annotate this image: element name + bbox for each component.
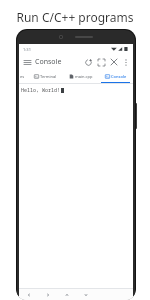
- button[interactable]: Terminal: [27, 70, 63, 83]
- staticText: Terminal: [40, 74, 57, 79]
- staticText: Hello, World!: [21, 87, 61, 94]
- button[interactable]: Open navigation menu: [22, 57, 33, 68]
- button[interactable]: Left: [19, 289, 38, 300]
- button[interactable]: Previous tab: [19, 70, 27, 83]
- staticText: Console: [111, 74, 127, 79]
- button[interactable]: Right: [38, 289, 57, 300]
- button[interactable]: Fullscreen: [95, 56, 107, 68]
- button[interactable]: More options: [121, 57, 131, 67]
- button[interactable]: main.cpp: [63, 70, 98, 83]
- staticText: 1:31: [23, 47, 31, 52]
- button[interactable]: Console: [98, 70, 133, 83]
- button[interactable]: Restart: [82, 56, 94, 68]
- staticText: Console: [35, 57, 62, 67]
- button[interactable]: Hello, World!: [19, 84, 133, 288]
- button[interactable]: Close: [108, 56, 120, 68]
- staticText: es: [20, 74, 25, 79]
- button[interactable]: Up: [57, 289, 76, 300]
- staticText: main.cpp: [75, 74, 93, 79]
- button[interactable]: Down: [76, 289, 95, 300]
- staticText: Run C/C++ programs: [16, 9, 134, 25]
